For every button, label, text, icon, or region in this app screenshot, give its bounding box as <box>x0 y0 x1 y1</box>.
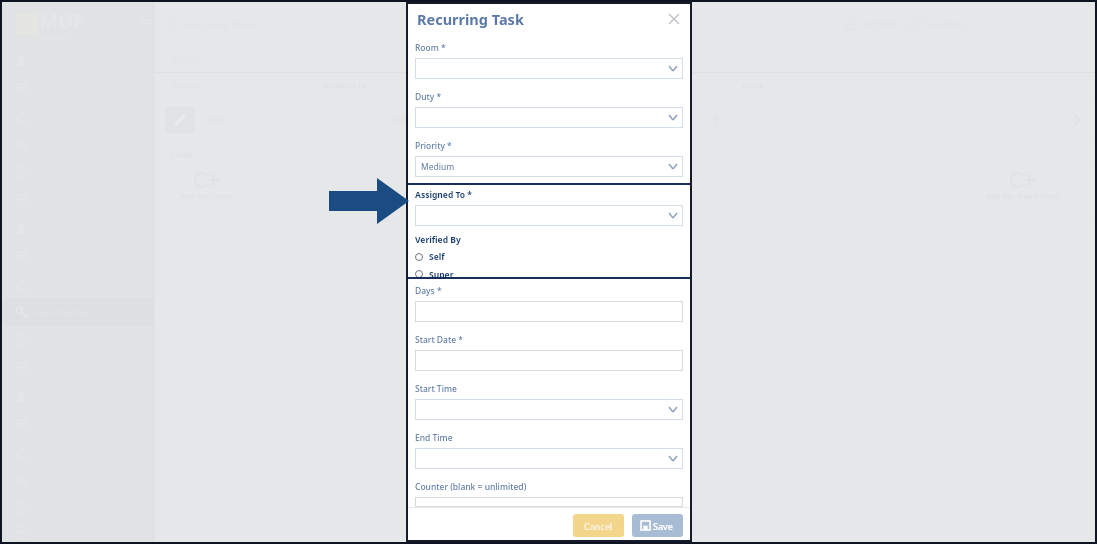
button[interactable] <box>415 205 683 226</box>
staticText: Days * <box>415 285 442 297</box>
button[interactable] <box>415 497 683 507</box>
button[interactable]: Medium <box>415 156 683 177</box>
button[interactable] <box>415 301 683 322</box>
button[interactable] <box>415 399 683 420</box>
staticText: End Time <box>415 432 453 444</box>
staticText: Start Time <box>415 383 457 395</box>
staticText: Start Date * <box>415 334 463 346</box>
button[interactable]: Close <box>664 9 684 29</box>
button[interactable]: Super <box>415 269 454 279</box>
button[interactable]: Self <box>415 251 445 263</box>
button[interactable]: Cancel <box>573 514 624 537</box>
button[interactable]: Save <box>632 514 683 537</box>
staticText: Save <box>653 520 674 532</box>
button[interactable] <box>415 448 683 469</box>
staticText: Cancel <box>584 520 613 532</box>
staticText: Duty * <box>415 91 442 103</box>
button[interactable] <box>415 107 683 128</box>
staticText: Recurring Task <box>417 9 524 29</box>
staticText: Assigned To * <box>415 189 472 201</box>
staticText: Room * <box>415 42 446 54</box>
staticText: Verified By <box>415 234 461 246</box>
staticText: Priority * <box>415 140 452 152</box>
staticText: Self <box>429 251 445 263</box>
button[interactable] <box>415 58 683 79</box>
staticText: Medium <box>421 161 455 173</box>
staticText: Super <box>429 269 454 279</box>
button[interactable] <box>415 350 683 371</box>
staticText: RUBY <box>393 114 416 126</box>
staticText: Counter (blank = unlimited) <box>415 481 527 493</box>
